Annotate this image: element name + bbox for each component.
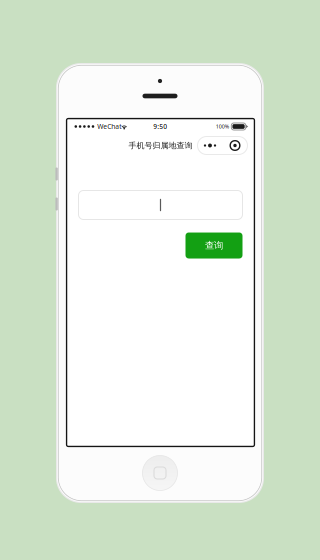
staticText: 手机号归属地查询 (128, 141, 192, 150)
staticText: 9:50 (153, 122, 167, 131)
staticText: WeChat (97, 122, 121, 131)
button[interactable] (78, 190, 242, 219)
button[interactable]: Mini program menu (197, 136, 247, 154)
staticText: 查询 (205, 240, 223, 251)
button[interactable]: 查询 (185, 232, 242, 258)
staticText: 100% (216, 123, 229, 130)
